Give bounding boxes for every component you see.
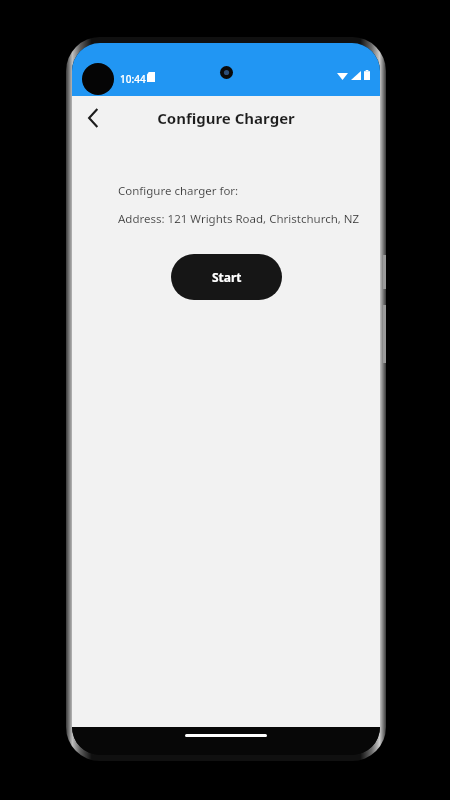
staticText: 10:44 [120, 72, 146, 86]
staticText: Address: 121 Wrights Road, Christchurch,… [118, 211, 360, 227]
button[interactable]: Back [72, 97, 114, 139]
button[interactable]: Start [171, 254, 282, 300]
staticText: Configure Charger [157, 108, 295, 128]
staticText: Configure charger for: [118, 183, 239, 199]
staticText: Start [212, 269, 242, 285]
